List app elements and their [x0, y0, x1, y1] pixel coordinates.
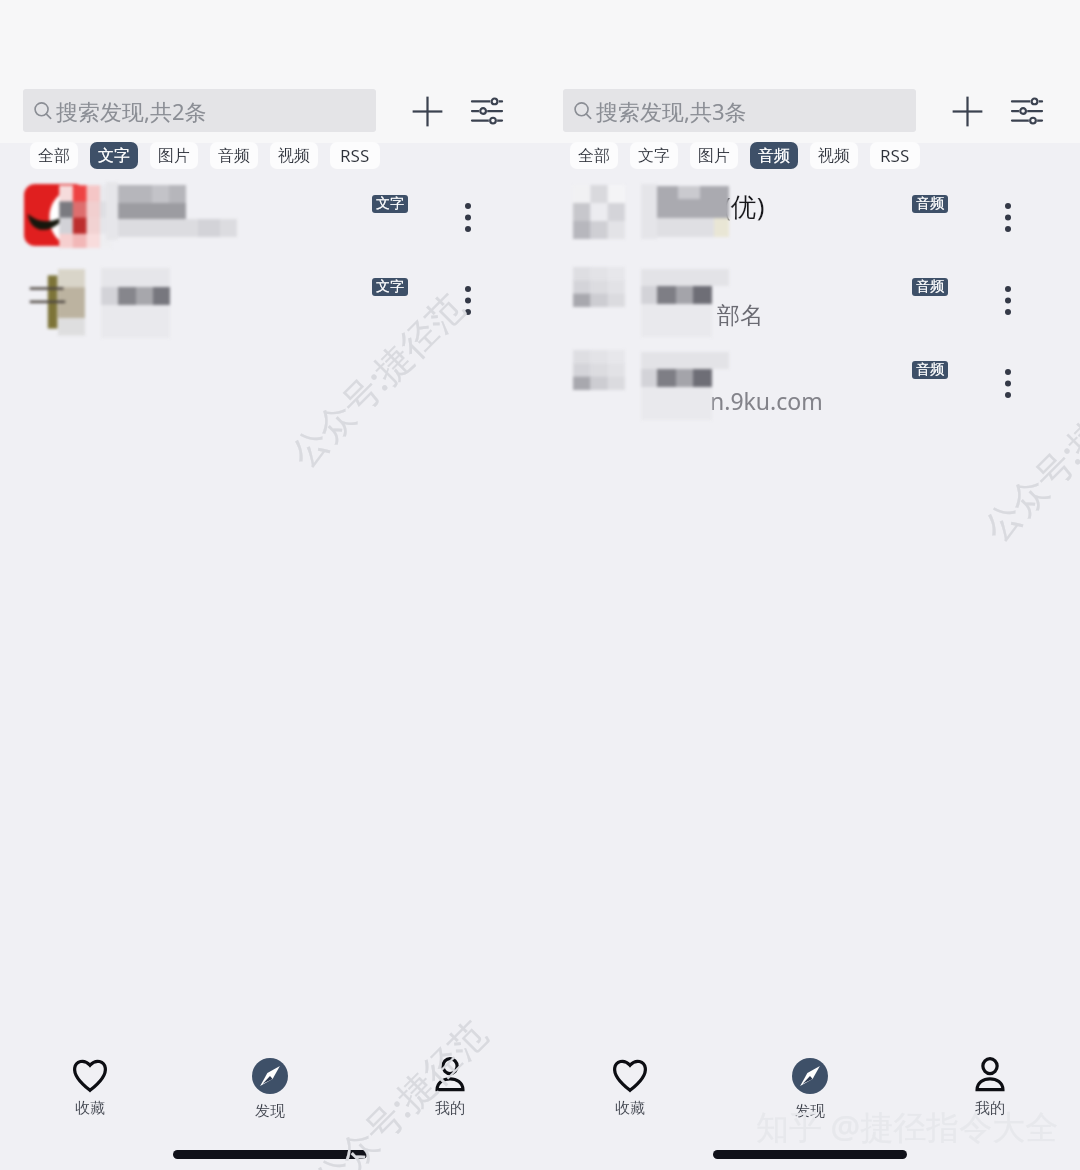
button[interactable]: 音频 — [912, 195, 948, 213]
button[interactable]: 视频 — [810, 142, 858, 169]
button[interactable]: Add — [945, 89, 989, 133]
button[interactable]: 文字 — [630, 142, 678, 169]
button[interactable]: Add — [405, 89, 449, 133]
button[interactable]: 音频 — [912, 361, 948, 379]
button[interactable]: More options — [452, 284, 484, 316]
staticText: 音频 — [218, 146, 250, 166]
staticText: 文字 — [98, 146, 130, 166]
button[interactable]: 我的 — [360, 1058, 540, 1118]
staticText: 视频 — [818, 146, 850, 166]
staticText: 知乎 @捷径指令大全 — [756, 1104, 1059, 1149]
button[interactable]: 文字 — [372, 278, 408, 296]
button[interactable]: 音频 — [210, 142, 258, 169]
button[interactable]: 发现 — [720, 1058, 900, 1118]
staticText: 公众号:捷径范 — [279, 282, 470, 473]
staticText: (优) — [723, 188, 765, 224]
button[interactable]: 文字 — [90, 142, 138, 169]
staticText: 图片 — [158, 146, 190, 166]
button[interactable]: More options — [452, 201, 484, 233]
button[interactable]: 图片 — [690, 142, 738, 169]
staticText: 部名 — [717, 301, 763, 330]
staticText: 收藏 — [75, 1099, 105, 1118]
staticText: 音频 — [916, 278, 944, 296]
button[interactable]: RSS — [870, 142, 920, 169]
button[interactable]: 视频 — [270, 142, 318, 169]
button[interactable]: 收藏 — [540, 1058, 720, 1118]
staticText: 收藏 — [615, 1099, 645, 1118]
staticText: RSS — [880, 144, 910, 167]
button[interactable]: n.9ku.com — [540, 348, 1080, 431]
button[interactable]: More options — [992, 284, 1024, 316]
staticText: 文字 — [638, 146, 670, 166]
button[interactable]: 文字 — [0, 182, 540, 265]
staticText: 全部 — [578, 146, 610, 166]
staticText: 发现 — [795, 1102, 825, 1118]
button[interactable]: 音频 — [750, 142, 798, 169]
staticText: 视频 — [278, 146, 310, 166]
button[interactable]: More options — [992, 367, 1024, 399]
button[interactable]: RSS — [330, 142, 380, 169]
staticText: 文字 — [376, 278, 404, 296]
button[interactable]: Filter — [465, 89, 509, 133]
staticText: 我的 — [435, 1099, 465, 1118]
staticText: 音频 — [916, 361, 944, 379]
button[interactable]: (优) — [540, 182, 1080, 265]
staticText: 文字 — [376, 195, 404, 213]
staticText: RSS — [340, 144, 370, 167]
button[interactable]: More options — [992, 201, 1024, 233]
staticText: 公众号:捷径范 — [302, 1009, 493, 1170]
button[interactable]: 部名 — [540, 265, 1080, 348]
button[interactable]: 文字 — [372, 195, 408, 213]
button[interactable]: 收藏 — [0, 1058, 180, 1118]
button[interactable]: 发现 — [180, 1058, 360, 1118]
button[interactable]: 全部 — [30, 142, 78, 169]
staticText: 图片 — [698, 146, 730, 166]
button[interactable]: 音频 — [912, 278, 948, 296]
button[interactable]: Filter — [1005, 89, 1049, 133]
staticText: 搜索发现,共2条 — [56, 96, 207, 126]
staticText: 公众号:捷径范 — [972, 356, 1080, 547]
staticText: 我的 — [975, 1099, 1005, 1118]
button[interactable]: 图片 — [150, 142, 198, 169]
button[interactable]: 文字 — [0, 265, 540, 348]
button[interactable]: 我的 — [900, 1058, 1080, 1118]
button[interactable]: 全部 — [570, 142, 618, 169]
staticText: n.9ku.com — [710, 385, 823, 416]
staticText: 搜索发现,共3条 — [596, 96, 747, 126]
staticText: 音频 — [916, 195, 944, 213]
staticText: 全部 — [38, 146, 70, 166]
button[interactable]: 搜索发现,共2条 — [23, 89, 376, 132]
staticText: 音频 — [758, 146, 790, 166]
staticText: 发现 — [255, 1102, 285, 1118]
button[interactable]: 搜索发现,共3条 — [563, 89, 916, 132]
